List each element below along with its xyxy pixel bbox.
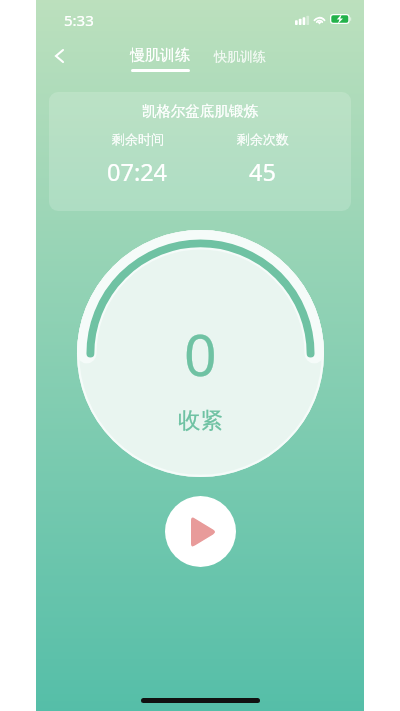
staticText: 剩余时间 [112, 131, 164, 147]
button[interactable]: Back [39, 36, 79, 76]
staticText: 45 [249, 156, 276, 188]
staticText: 慢肌训练 [130, 46, 190, 65]
button[interactable]: 快肌训练 [200, 48, 280, 74]
staticText: 0 [184, 315, 217, 393]
button[interactable]: Counter [77, 230, 324, 477]
staticText: 凯格尔盆底肌锻炼 [142, 102, 258, 120]
staticText: 07:24 [107, 156, 168, 188]
button[interactable]: 慢肌训练 [115, 46, 205, 78]
button[interactable]: 凯格尔盆底肌锻炼 [49, 92, 351, 211]
staticText: 5:33 [64, 10, 94, 30]
staticText: 收紧 [178, 406, 223, 434]
staticText: 快肌训练 [214, 48, 266, 64]
staticText: 剩余次数 [237, 131, 289, 147]
button[interactable]: Play [165, 496, 236, 567]
